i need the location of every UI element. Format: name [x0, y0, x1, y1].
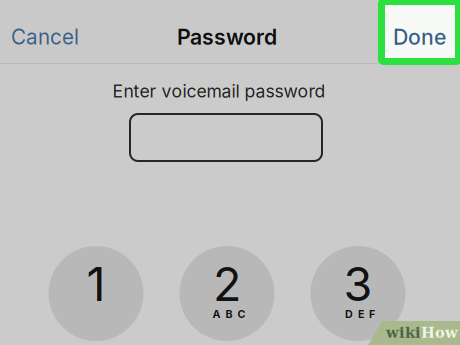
staticText: 3: [343, 256, 372, 312]
staticText: How: [421, 324, 458, 341]
button[interactable]: Cancel: [0, 0, 90, 30]
staticText: Cancel: [11, 24, 79, 49]
staticText: 2: [213, 256, 241, 312]
staticText: Enter voicemail password: [112, 80, 325, 102]
button[interactable]: 2: [179, 246, 274, 341]
staticText: Password: [177, 24, 277, 50]
staticText: ABC: [212, 307, 245, 320]
button[interactable]: 3: [310, 246, 405, 341]
staticText: DEF: [345, 307, 375, 320]
button[interactable]: 1: [48, 246, 143, 341]
staticText: 1: [86, 256, 105, 312]
staticText: wiki: [386, 324, 421, 341]
staticText: Done: [393, 24, 446, 50]
button[interactable]: Done: [0, 0, 70, 30]
